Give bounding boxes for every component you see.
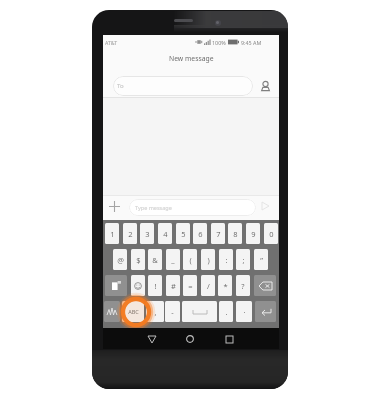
button[interactable]: Home xyxy=(182,331,198,347)
staticText: # xyxy=(171,281,176,291)
staticText: · xyxy=(243,307,246,317)
button[interactable]: = xyxy=(183,275,197,296)
button[interactable]: ( xyxy=(183,249,197,270)
button[interactable]: & xyxy=(148,249,162,270)
button[interactable]: ! xyxy=(148,275,162,296)
button[interactable]: : xyxy=(219,249,233,270)
button[interactable]: * xyxy=(218,275,232,296)
staticText: $ xyxy=(136,255,141,265)
staticText: 3 xyxy=(145,229,150,239)
staticText: 9 xyxy=(251,229,256,239)
other: More symbols xyxy=(112,281,121,290)
staticText: - xyxy=(171,307,174,317)
button[interactable]: ) xyxy=(201,249,215,270)
button[interactable]: 0 xyxy=(264,223,278,244)
staticText: Type message xyxy=(135,204,172,211)
staticText: 4 xyxy=(163,229,168,239)
button[interactable]: Choose contact xyxy=(257,76,273,96)
staticText: ; xyxy=(242,255,245,265)
button[interactable]: 1 xyxy=(105,223,119,244)
button[interactable]: 6 xyxy=(193,223,207,244)
button[interactable]: . xyxy=(219,301,233,322)
button[interactable]: $ xyxy=(131,249,145,270)
button[interactable]: Type message xyxy=(129,199,256,216)
staticText: / xyxy=(207,281,210,291)
button[interactable]: - xyxy=(165,301,180,322)
staticText: & xyxy=(152,255,158,265)
button[interactable]: 3 xyxy=(140,223,154,244)
staticText: 1 xyxy=(110,229,115,239)
staticText: . xyxy=(225,307,228,317)
staticText: 0 xyxy=(269,229,274,239)
button[interactable]: # xyxy=(166,275,180,296)
staticText: @ xyxy=(117,255,124,265)
staticText: 2 xyxy=(128,229,133,239)
staticText: 8 xyxy=(233,229,238,239)
staticText: 5 xyxy=(181,229,186,239)
staticText: New message xyxy=(169,54,214,63)
button[interactable]: 5 xyxy=(176,223,190,244)
staticText: ! xyxy=(154,281,157,291)
button[interactable]: Send xyxy=(257,198,273,214)
button[interactable]: ? xyxy=(236,275,250,296)
other: Backspace xyxy=(259,282,272,290)
button[interactable]: 2 xyxy=(123,223,137,244)
staticText: : xyxy=(225,255,228,265)
staticText: ABC xyxy=(128,308,139,315)
button[interactable]: @ xyxy=(113,249,127,270)
staticText: AT&T xyxy=(105,39,118,46)
button[interactable]: _ xyxy=(166,249,180,270)
button[interactable]: 9 xyxy=(246,223,260,244)
button[interactable]: Enter xyxy=(255,301,276,322)
staticText: _ xyxy=(171,255,175,265)
button[interactable]: To xyxy=(113,76,253,96)
button[interactable]: 8 xyxy=(228,223,242,244)
button[interactable]: ABC xyxy=(122,301,144,322)
other: Voice input xyxy=(107,307,117,317)
button[interactable]: ” xyxy=(254,249,268,270)
staticText: * xyxy=(223,281,228,291)
button[interactable]: Recent apps xyxy=(221,331,237,347)
staticText: ( xyxy=(189,255,192,265)
staticText: ? xyxy=(241,281,245,291)
staticText: 100% xyxy=(212,39,226,46)
staticText: ) xyxy=(207,255,210,265)
button[interactable]: , xyxy=(146,301,164,322)
staticText: 6 xyxy=(198,229,203,239)
other: Emoji xyxy=(134,282,142,290)
button[interactable]: 4 xyxy=(158,223,172,244)
staticText: To xyxy=(117,82,124,90)
other: Enter xyxy=(261,308,271,316)
button[interactable]: Voice input xyxy=(104,301,120,322)
button[interactable]: Emoji xyxy=(131,275,145,296)
button[interactable]: / xyxy=(201,275,215,296)
button[interactable]: 7 xyxy=(211,223,225,244)
staticText: 7 xyxy=(216,229,221,239)
staticText: 9:45 AM xyxy=(241,39,262,46)
button[interactable]: Back xyxy=(144,331,160,347)
button[interactable]: Backspace xyxy=(254,275,276,296)
button[interactable]: More symbols xyxy=(105,275,127,296)
button[interactable]: ; xyxy=(236,249,250,270)
staticText: = xyxy=(188,281,193,291)
staticText: , xyxy=(154,307,157,317)
button[interactable]: · xyxy=(236,301,252,322)
button[interactable] xyxy=(182,301,217,322)
button[interactable]: Add attachment xyxy=(106,198,122,214)
staticText: ” xyxy=(260,255,263,265)
